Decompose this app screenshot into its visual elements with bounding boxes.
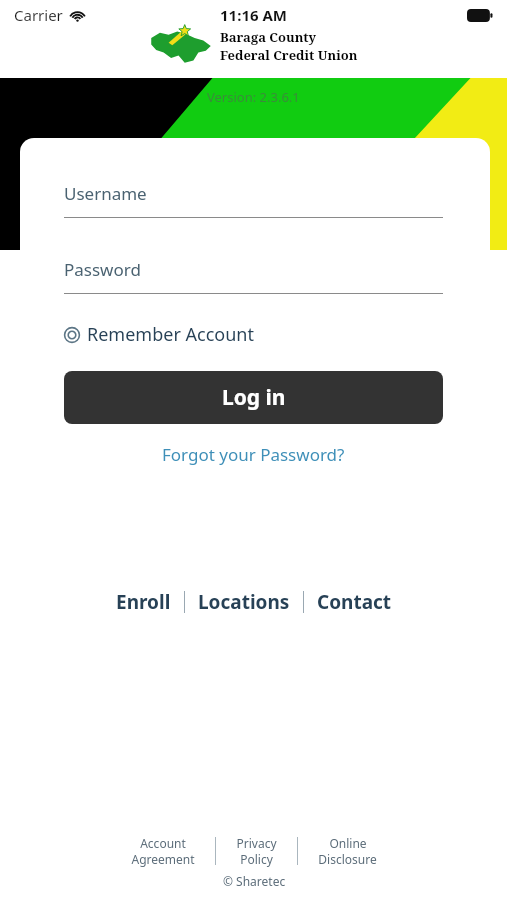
staticText: Agreement [131, 851, 195, 867]
staticText: Locations [198, 589, 290, 615]
button[interactable]: Contact [304, 585, 405, 619]
staticText: Online [329, 835, 367, 851]
button[interactable]: Locations [185, 585, 303, 619]
staticText: Username [64, 182, 147, 205]
staticText: Federal Credit Union [220, 46, 358, 64]
button[interactable]: Forgot your Password? [64, 438, 443, 471]
staticText: © Sharetec [223, 873, 286, 889]
staticText: Carrier [14, 5, 63, 25]
staticText: Disclosure [318, 851, 377, 867]
staticText: Enroll [116, 589, 171, 615]
button[interactable]: Enroll [103, 585, 184, 619]
staticText: Version: 2.3.6.1 [207, 88, 300, 106]
staticText: Contact [317, 589, 392, 615]
staticText: Forgot your Password? [162, 443, 345, 466]
button[interactable]: Account [111, 833, 215, 869]
staticText: Password [64, 258, 141, 281]
button[interactable]: Log in [64, 371, 443, 424]
button[interactable]: Username [64, 182, 443, 218]
button[interactable]: Password [64, 258, 443, 294]
button[interactable]: Online [298, 833, 397, 869]
staticText: 11:16 AM [220, 5, 287, 25]
staticText: Account [140, 835, 186, 851]
staticText: Privacy [236, 835, 277, 851]
staticText: Log in [222, 383, 286, 412]
button[interactable]: Privacy [216, 833, 297, 869]
staticText: Baraga County [220, 28, 317, 46]
button[interactable]: Remember Account [64, 318, 254, 351]
staticText: Policy [240, 851, 273, 867]
staticText: Remember Account [87, 322, 254, 347]
